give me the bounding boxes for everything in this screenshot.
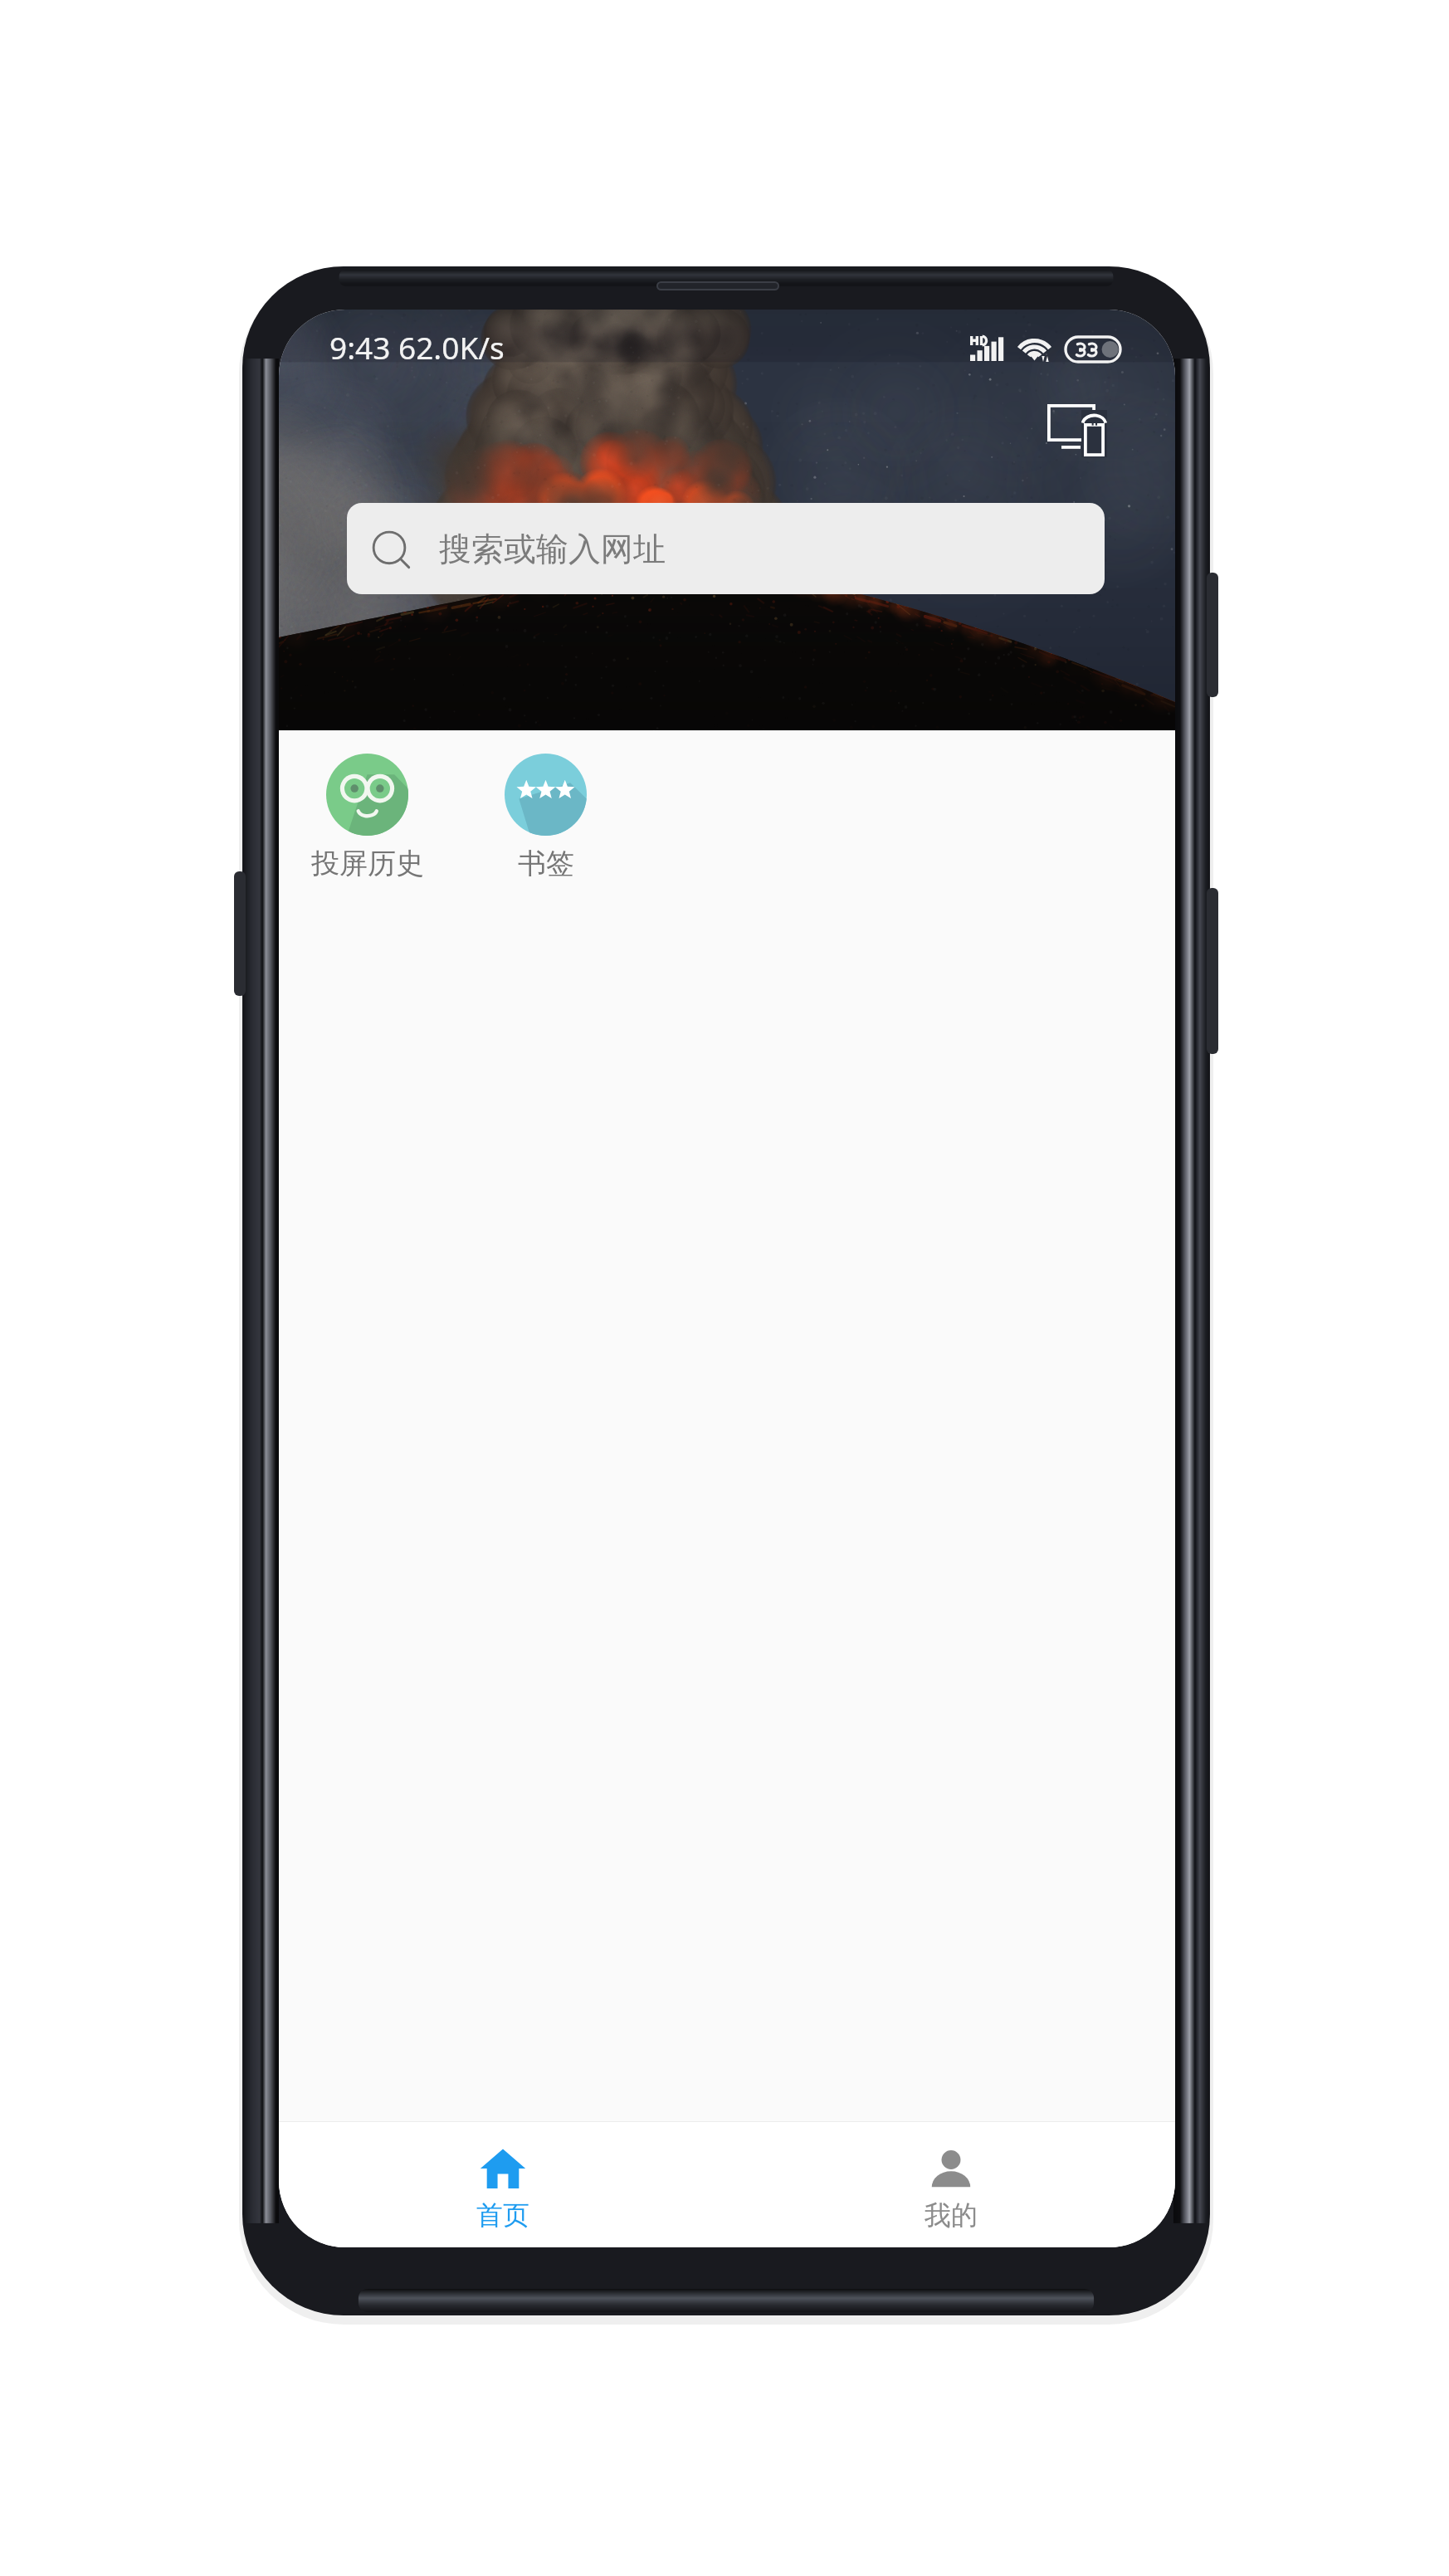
button[interactable]: 书签 — [456, 734, 635, 893]
staticText: 书签 — [518, 846, 574, 881]
staticText: 9:43 62.0K/s — [329, 326, 505, 368]
staticText: 首页 — [476, 2198, 529, 2232]
button[interactable]: 首页 — [279, 2121, 727, 2247]
button[interactable]: 搜索或输入网址 — [347, 503, 1105, 594]
button[interactable]: 我的 — [727, 2121, 1175, 2247]
staticText: 投屏历史 — [311, 846, 424, 881]
button[interactable]: Cast to device — [1047, 404, 1107, 457]
staticText: 搜索或输入网址 — [439, 529, 666, 569]
staticText: 我的 — [925, 2198, 978, 2232]
button[interactable]: 投屏历史 — [279, 734, 456, 893]
